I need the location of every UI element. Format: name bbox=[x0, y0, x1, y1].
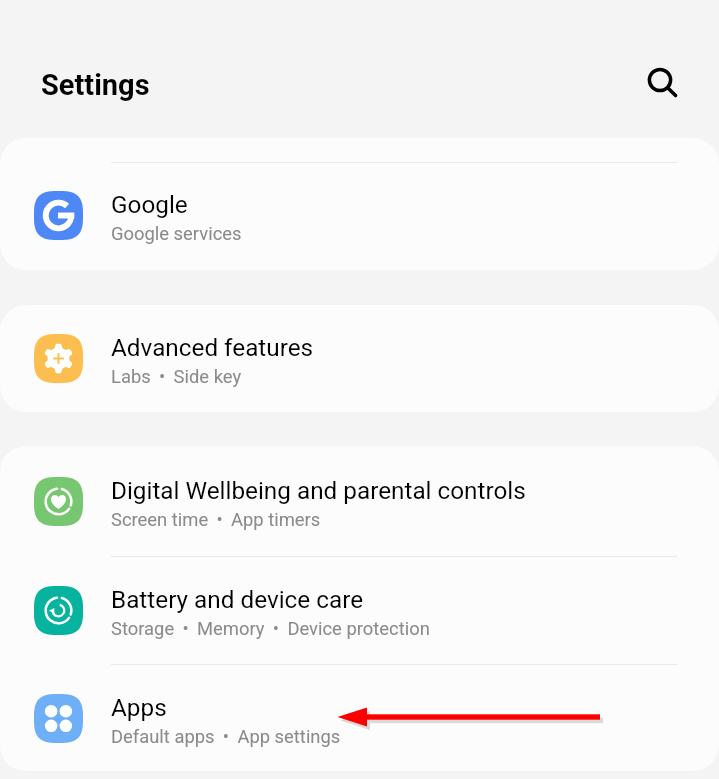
staticText: Labs • Side key bbox=[111, 366, 242, 388]
button[interactable]: Advanced features bbox=[0, 305, 719, 412]
button[interactable]: Digital Wellbeing and parental controls bbox=[0, 446, 719, 556]
staticText: Advanced features bbox=[111, 333, 314, 361]
staticText: Storage • Memory • Device protection bbox=[111, 618, 430, 640]
staticText: Battery and device care bbox=[111, 585, 364, 613]
staticText: Apps bbox=[111, 693, 167, 721]
staticText: Digital Wellbeing and parental controls bbox=[111, 476, 526, 504]
button[interactable]: Google bbox=[0, 162, 719, 269]
button[interactable]: Search bbox=[636, 56, 684, 104]
staticText: Google bbox=[111, 190, 188, 218]
staticText: Settings bbox=[41, 68, 150, 102]
button[interactable]: Apps bbox=[0, 665, 719, 771]
staticText: Screen time • App timers bbox=[111, 509, 321, 531]
button[interactable]: Battery and device care bbox=[0, 557, 719, 664]
staticText: Default apps • App settings bbox=[111, 726, 341, 748]
staticText: Google services bbox=[111, 223, 242, 245]
